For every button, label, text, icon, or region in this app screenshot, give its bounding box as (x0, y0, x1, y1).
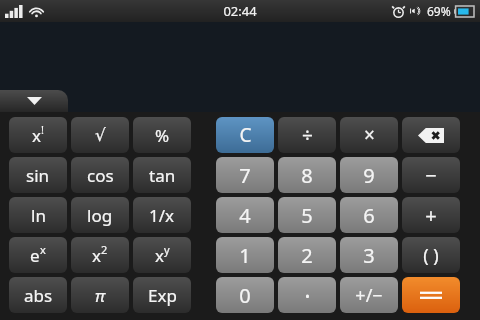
button[interactable]: ÷ (278, 117, 336, 153)
button[interactable]: Exp (133, 277, 191, 313)
button[interactable]: Show history (0, 90, 68, 112)
button[interactable]: x (9, 117, 67, 153)
button[interactable]: 9 (340, 157, 398, 193)
button[interactable]: cos (71, 157, 129, 193)
staticText: log (87, 204, 113, 227)
staticText: y (164, 242, 170, 257)
staticText: % (155, 124, 170, 147)
staticText: ln (31, 204, 46, 227)
button[interactable]: 1 (216, 237, 274, 273)
staticText: Exp (148, 284, 177, 307)
staticText: sin (26, 164, 50, 187)
button[interactable]: abs (9, 277, 67, 313)
staticText: ! (41, 122, 44, 137)
button[interactable]: · (278, 277, 336, 313)
button[interactable]: 1/x (133, 197, 191, 233)
staticText: abs (24, 284, 53, 307)
staticText: tan (149, 164, 176, 187)
staticText: 6 (363, 202, 375, 229)
button[interactable]: 7 (216, 157, 274, 193)
button[interactable]: log (71, 197, 129, 233)
staticText: × (364, 122, 375, 148)
staticText: √ (95, 125, 106, 145)
staticText: 4 (239, 202, 251, 229)
button[interactable]: + (402, 197, 460, 233)
button[interactable]: x (71, 237, 129, 273)
staticText: cos (87, 164, 114, 187)
staticText: 02:44 (223, 2, 257, 20)
staticText: x (32, 124, 41, 147)
staticText: x (92, 244, 101, 267)
button[interactable]: % (133, 117, 191, 153)
button[interactable]: C (216, 117, 274, 153)
staticText: x (40, 242, 46, 257)
staticText: 69% (427, 3, 451, 19)
button[interactable]: 2 (278, 237, 336, 273)
staticText: 8 (301, 162, 313, 189)
staticText: − (425, 162, 437, 189)
button[interactable]: sin (9, 157, 67, 193)
staticText: 3 (363, 242, 375, 269)
staticText: 1 (239, 242, 251, 269)
staticText: + (425, 202, 437, 229)
button[interactable]: Backspace (402, 117, 460, 153)
button[interactable]: − (402, 157, 460, 193)
button[interactable]: 4 (216, 197, 274, 233)
button[interactable]: tan (133, 157, 191, 193)
staticText: ( ) (423, 243, 439, 268)
button[interactable]: 3 (340, 237, 398, 273)
button[interactable]: ln (9, 197, 67, 233)
staticText: 9 (363, 162, 375, 189)
staticText: 5 (301, 202, 313, 229)
staticText: e (30, 244, 40, 267)
button[interactable]: 5 (278, 197, 336, 233)
staticText: 2 (301, 242, 313, 269)
staticText: · (304, 279, 311, 312)
staticText: C (239, 122, 252, 148)
button[interactable]: √ (71, 117, 129, 153)
staticText: π (95, 284, 105, 307)
button[interactable]: +/− (340, 277, 398, 313)
staticText: 0 (239, 282, 251, 309)
button[interactable]: × (340, 117, 398, 153)
button[interactable]: 6 (340, 197, 398, 233)
staticText: ÷ (302, 122, 313, 148)
button[interactable]: π (71, 277, 129, 313)
staticText: 7 (239, 162, 251, 189)
staticText: x (155, 244, 164, 267)
button[interactable]: 8 (278, 157, 336, 193)
button[interactable]: e (9, 237, 67, 273)
button[interactable]: ( ) (402, 237, 460, 273)
staticText: +/− (355, 283, 383, 308)
staticText: 2 (101, 242, 108, 257)
button[interactable]: x (133, 237, 191, 273)
staticText: 1/x (149, 204, 175, 227)
button[interactable]: 0 (216, 277, 274, 313)
button[interactable]: Equals (402, 277, 460, 313)
